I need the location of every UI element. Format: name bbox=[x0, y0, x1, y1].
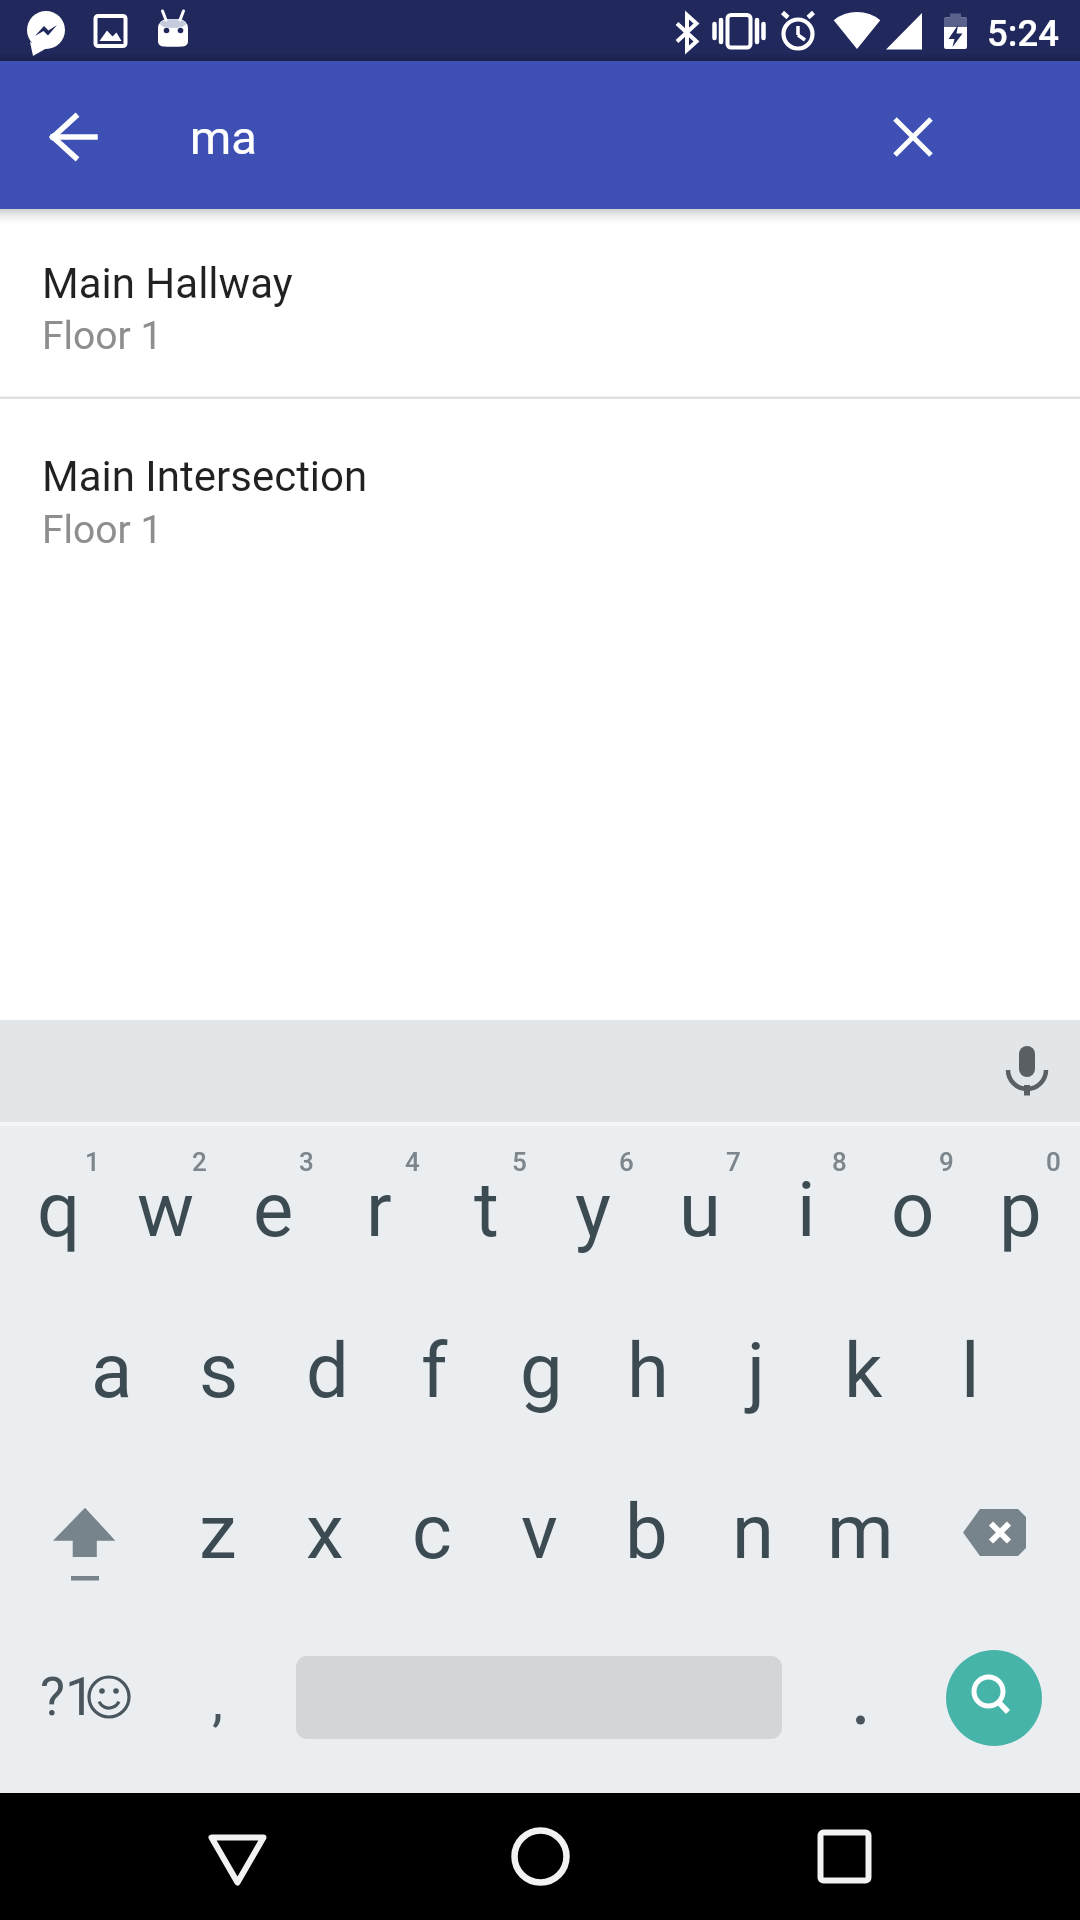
button[interactable] bbox=[174, 1793, 301, 1920]
staticText: f bbox=[421, 1326, 448, 1415]
staticText: d bbox=[306, 1326, 349, 1415]
staticText: n bbox=[732, 1487, 774, 1576]
staticText: i bbox=[797, 1165, 816, 1254]
staticText: s bbox=[199, 1326, 239, 1415]
button[interactable] bbox=[477, 1793, 604, 1920]
staticText: Floor 1 bbox=[42, 313, 163, 359]
staticText: 5 bbox=[512, 1147, 527, 1177]
staticText: ma bbox=[190, 110, 257, 165]
button[interactable] bbox=[781, 1793, 908, 1920]
button[interactable] bbox=[810, 1295, 916, 1455]
staticText: h bbox=[627, 1326, 669, 1415]
button[interactable] bbox=[24, 1466, 149, 1606]
staticText: o bbox=[891, 1165, 935, 1254]
button[interactable] bbox=[220, 1128, 326, 1288]
button[interactable] bbox=[946, 1650, 1042, 1746]
staticText: z bbox=[199, 1487, 237, 1576]
staticText: 8 bbox=[832, 1147, 847, 1177]
button[interactable] bbox=[379, 1456, 485, 1616]
button[interactable] bbox=[272, 1456, 378, 1616]
button[interactable] bbox=[860, 1128, 966, 1288]
button[interactable] bbox=[647, 1128, 753, 1288]
staticText: 6 bbox=[619, 1147, 634, 1177]
staticText: ?1 bbox=[40, 1666, 95, 1728]
staticText: 2 bbox=[192, 1147, 207, 1177]
button[interactable] bbox=[59, 1295, 165, 1455]
staticText: e bbox=[253, 1165, 294, 1254]
staticText: 5:24 bbox=[987, 12, 1059, 55]
staticText: j bbox=[747, 1326, 766, 1415]
staticText: b bbox=[625, 1487, 668, 1576]
button[interactable] bbox=[165, 1456, 271, 1616]
staticText: 7 bbox=[726, 1147, 741, 1177]
button[interactable] bbox=[595, 1295, 701, 1455]
staticText: t bbox=[474, 1165, 499, 1254]
button[interactable] bbox=[540, 1128, 646, 1288]
staticText: 1 bbox=[85, 1147, 100, 1177]
staticText: , bbox=[212, 1668, 224, 1734]
button[interactable] bbox=[917, 1295, 1023, 1455]
staticText: x bbox=[306, 1487, 344, 1576]
button[interactable] bbox=[808, 1630, 914, 1770]
button[interactable] bbox=[20, 83, 128, 191]
button[interactable] bbox=[753, 1128, 859, 1288]
button[interactable]: Main Hallway bbox=[0, 209, 1080, 398]
staticText: l bbox=[961, 1326, 980, 1415]
button[interactable] bbox=[703, 1295, 809, 1455]
button[interactable] bbox=[6, 1128, 112, 1288]
button[interactable] bbox=[700, 1456, 806, 1616]
button[interactable] bbox=[967, 1128, 1073, 1288]
staticText: k bbox=[844, 1326, 883, 1415]
button[interactable] bbox=[326, 1128, 432, 1288]
staticText: q bbox=[37, 1165, 81, 1254]
staticText: 0 bbox=[1046, 1147, 1061, 1177]
button[interactable] bbox=[166, 1295, 272, 1455]
button[interactable]: Main Intersection bbox=[0, 399, 1080, 589]
staticText: p bbox=[999, 1165, 1042, 1254]
staticText: u bbox=[679, 1165, 721, 1254]
staticText: c bbox=[412, 1487, 452, 1576]
staticText: m bbox=[827, 1487, 894, 1576]
button[interactable] bbox=[593, 1456, 699, 1616]
staticText: v bbox=[521, 1487, 558, 1576]
button[interactable] bbox=[859, 83, 967, 191]
button[interactable] bbox=[486, 1456, 592, 1616]
staticText: 9 bbox=[939, 1147, 954, 1177]
staticText: Floor 1 bbox=[42, 507, 163, 553]
staticText: 4 bbox=[405, 1147, 420, 1177]
button[interactable] bbox=[113, 1128, 219, 1288]
staticText: Main Hallway bbox=[42, 259, 293, 308]
staticText: Main Intersection bbox=[42, 452, 368, 501]
staticText: a bbox=[91, 1326, 133, 1415]
button[interactable] bbox=[165, 1630, 271, 1770]
staticText: y bbox=[575, 1165, 611, 1254]
button[interactable] bbox=[807, 1456, 913, 1616]
button[interactable] bbox=[488, 1295, 594, 1455]
button[interactable] bbox=[976, 1020, 1078, 1122]
button[interactable]: ?1 bbox=[8, 1630, 158, 1770]
staticText: w bbox=[137, 1165, 195, 1254]
button[interactable] bbox=[433, 1128, 539, 1288]
staticText: r bbox=[366, 1165, 392, 1254]
button[interactable] bbox=[274, 1295, 380, 1455]
button[interactable] bbox=[940, 1466, 1065, 1606]
staticText: 3 bbox=[299, 1147, 314, 1177]
staticText: g bbox=[520, 1326, 563, 1415]
button[interactable] bbox=[381, 1295, 487, 1455]
